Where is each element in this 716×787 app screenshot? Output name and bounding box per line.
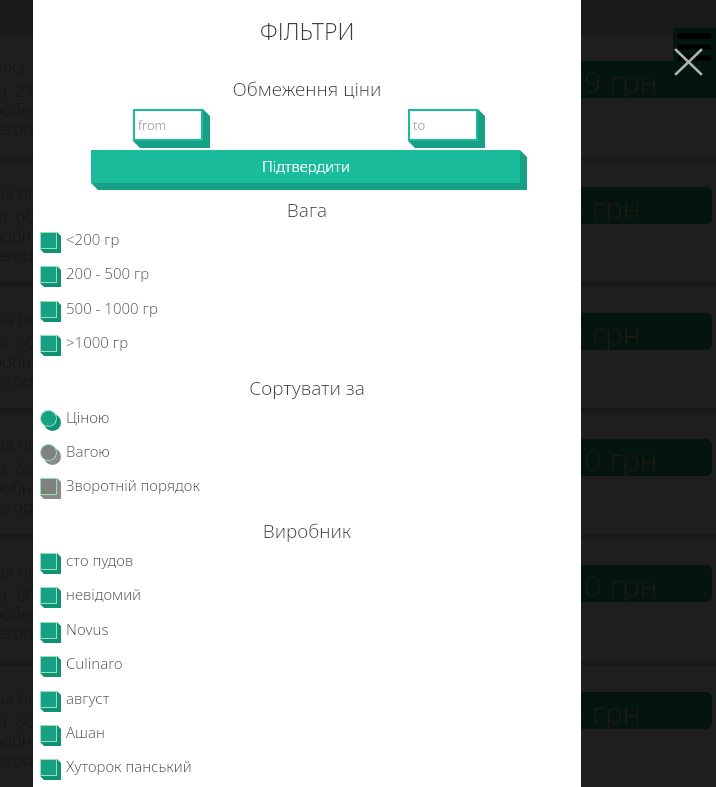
button[interactable]: 64 грн bbox=[0, 161, 716, 282]
staticText: Зворотній порядок bbox=[66, 475, 200, 495]
staticText: 45 грн bbox=[550, 692, 641, 729]
button[interactable]: 200 - 500 гр bbox=[33, 265, 581, 287]
button[interactable]: 500 - 1000 гр bbox=[33, 300, 581, 322]
staticText: Виробник bbox=[0, 602, 51, 621]
staticText: 200 - 500 гр bbox=[66, 263, 150, 283]
staticText: Каша пшенична bbox=[0, 307, 101, 330]
staticText: Каша пшенична bbox=[0, 559, 101, 582]
staticText: Вага: 600 bbox=[0, 457, 45, 476]
staticText: Culinaro bbox=[66, 653, 123, 673]
staticText: Категорія bbox=[0, 369, 47, 388]
staticText: Сортувати за bbox=[33, 375, 581, 401]
staticText: Виробник bbox=[0, 98, 51, 117]
button[interactable]: Ціною bbox=[33, 409, 581, 431]
staticText: Novus bbox=[66, 619, 109, 639]
button[interactable]: 289 грн bbox=[0, 35, 716, 156]
staticText: Виробник bbox=[0, 350, 51, 369]
staticText: Вага: 600 bbox=[0, 583, 45, 602]
button[interactable]: Ашан bbox=[33, 724, 581, 746]
staticText: from bbox=[138, 116, 167, 134]
staticText: 289 грн bbox=[550, 61, 658, 98]
button[interactable]: Підтвердити bbox=[91, 150, 520, 183]
staticText: Категорія bbox=[0, 748, 47, 767]
button[interactable]: август bbox=[33, 690, 581, 712]
staticText: Обмеження ціни bbox=[33, 76, 581, 102]
staticText: невідомий bbox=[66, 584, 142, 604]
button[interactable]: Хуторок панський bbox=[33, 758, 581, 780]
staticText: 110 грн bbox=[550, 439, 658, 476]
staticText: Виробник bbox=[0, 729, 51, 748]
staticText: Категорія bbox=[0, 621, 47, 640]
button[interactable]: >1000 гр bbox=[33, 334, 581, 356]
button[interactable]: from bbox=[133, 109, 210, 148]
staticText: сто пудов bbox=[66, 550, 134, 570]
staticText: август bbox=[66, 688, 110, 708]
button[interactable]: to bbox=[408, 109, 485, 148]
staticText: Вагою bbox=[66, 441, 110, 461]
button[interactable]: Culinaro bbox=[33, 655, 581, 677]
button[interactable]: Вагою bbox=[33, 443, 581, 465]
staticText: >1000 гр bbox=[66, 332, 129, 352]
button[interactable]: 110 грн bbox=[0, 413, 716, 534]
button[interactable]: Зворотній порядок bbox=[33, 477, 581, 499]
button[interactable]: сто пудов bbox=[33, 552, 581, 574]
staticText: ФІЛЬТРИ bbox=[33, 15, 581, 46]
staticText: Каша пшенична bbox=[0, 181, 101, 204]
staticText: Вага: 600 bbox=[0, 331, 45, 350]
button[interactable]: 30 грн bbox=[0, 287, 716, 408]
staticText: Виробник bbox=[0, 476, 51, 495]
staticText: Категорія bbox=[0, 117, 47, 136]
staticText: 500 - 1000 гр bbox=[66, 298, 158, 318]
staticText: Категорія bbox=[0, 243, 47, 262]
staticText: Каша пшенична bbox=[0, 686, 101, 709]
staticText: <200 гр bbox=[66, 229, 120, 249]
staticText: Вага: 21 bbox=[0, 79, 36, 98]
staticText: to bbox=[413, 116, 426, 134]
staticText: Вага: 600 bbox=[0, 205, 45, 224]
staticText: Хуторок панський bbox=[66, 756, 192, 776]
staticText: Вага: 600 bbox=[0, 710, 45, 729]
staticText: Вага bbox=[33, 197, 581, 223]
staticText: 64 грн bbox=[550, 187, 641, 224]
staticText: Ашан bbox=[66, 722, 105, 742]
button[interactable]: Close filters bbox=[673, 28, 716, 80]
button[interactable]: 220 грн bbox=[0, 539, 716, 660]
staticText: 220 грн bbox=[550, 565, 658, 602]
staticText: Виробник bbox=[33, 518, 581, 544]
button[interactable]: <200 гр bbox=[33, 231, 581, 253]
staticText: Ціною bbox=[66, 407, 110, 427]
staticText: Каша пшенична bbox=[0, 433, 101, 456]
staticText: Категорія bbox=[0, 495, 47, 514]
button[interactable]: Novus bbox=[33, 621, 581, 643]
staticText: 30 грн bbox=[550, 313, 641, 350]
button[interactable]: 45 грн bbox=[0, 666, 716, 787]
button[interactable]: невідомий bbox=[33, 586, 581, 608]
staticText: Виробник bbox=[0, 224, 51, 243]
staticText: Підтвердити bbox=[262, 156, 350, 176]
